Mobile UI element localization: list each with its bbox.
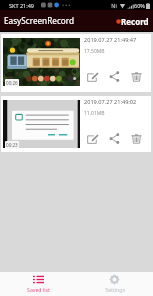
button[interactable]: 00:23 — [1, 96, 151, 152]
button[interactable]: Edit — [85, 131, 99, 145]
button[interactable]: Edit — [85, 69, 99, 83]
staticText: Record — [121, 16, 149, 27]
staticText: 60% — [134, 2, 145, 9]
button[interactable]: Delete — [129, 131, 143, 145]
staticText: SKT 21:49 — [9, 2, 34, 9]
staticText: Settings — [105, 286, 125, 293]
button[interactable]: Share — [107, 69, 121, 83]
staticText: Saved list — [27, 286, 50, 293]
staticText: 2019.07.27 21:49:02 — [84, 98, 137, 106]
staticText: 00:23 — [6, 142, 18, 148]
button[interactable]: Record — [116, 16, 149, 27]
staticText: 00:26 — [6, 80, 18, 86]
button[interactable]: Share — [107, 131, 121, 145]
staticText: 17.50MB — [84, 48, 105, 55]
button[interactable]: Delete — [129, 69, 143, 83]
staticText: 11.01MB — [84, 110, 105, 117]
button[interactable]: Saved list — [0, 272, 76, 296]
button[interactable]: 00:26 — [1, 34, 151, 92]
button[interactable]: Settings — [76, 272, 153, 296]
staticText: EasyScreenRecord — [4, 15, 75, 26]
staticText: 2019.07.27 21:49:47 — [84, 36, 137, 44]
